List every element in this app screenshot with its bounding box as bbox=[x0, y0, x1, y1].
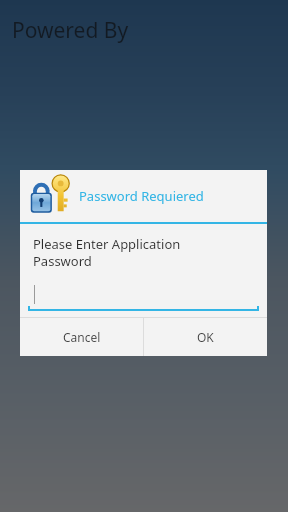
staticText: Powered By bbox=[12, 16, 129, 45]
staticText: Password Requiered bbox=[79, 187, 204, 205]
other: Password lock bbox=[29, 175, 73, 217]
button[interactable] bbox=[28, 283, 259, 312]
staticText: Please Enter Application Password bbox=[33, 235, 241, 270]
staticText: OK bbox=[197, 329, 214, 345]
button[interactable]: Cancel bbox=[20, 318, 143, 356]
button[interactable]: OK bbox=[144, 318, 267, 356]
staticText: Cancel bbox=[63, 329, 101, 345]
